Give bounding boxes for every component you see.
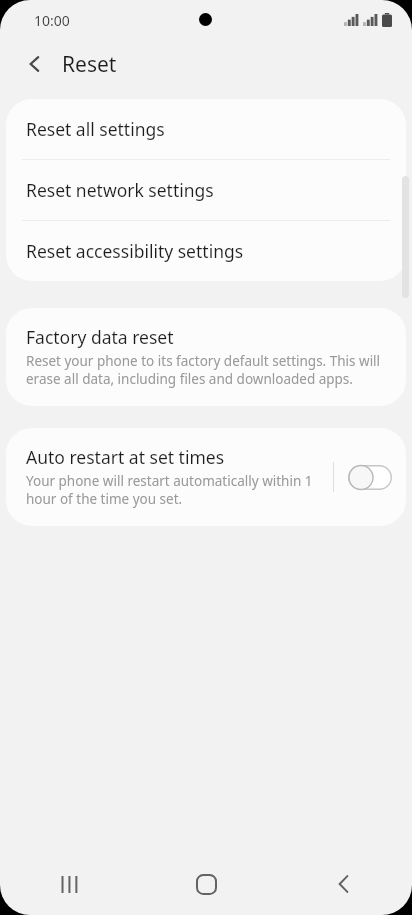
staticText: Reset your phone to its factory default … [26,352,386,388]
staticText: 10:00 [34,11,70,30]
button[interactable]: Reset network settings [6,160,406,220]
staticText: Reset [62,50,117,79]
button[interactable]: Factory data reset [6,308,406,406]
button[interactable]: Recents [0,853,138,915]
button[interactable]: Auto restart at set times toggle [346,457,394,497]
button[interactable]: Back [275,853,412,915]
staticText: Reset network settings [26,178,214,202]
button[interactable]: Auto restart at set times [6,428,333,526]
staticText: Your phone will restart automatically wi… [26,472,325,508]
staticText: Factory data reset [26,325,174,349]
button[interactable]: Reset accessibility settings [6,221,406,281]
button[interactable]: Reset all settings [6,99,406,159]
staticText: Reset all settings [26,117,165,141]
staticText: Reset accessibility settings [26,239,244,263]
button[interactable]: Home [138,853,275,915]
button[interactable]: Back [14,43,56,85]
staticText: Auto restart at set times [26,445,225,469]
